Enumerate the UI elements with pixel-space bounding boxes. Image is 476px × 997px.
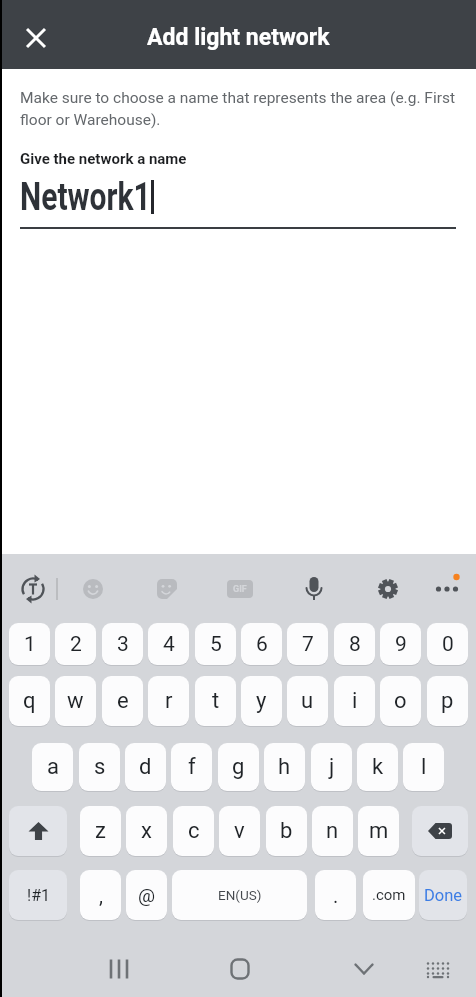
- button[interactable]: r: [148, 676, 189, 726]
- staticText: 3: [117, 632, 129, 657]
- button[interactable]: [368, 569, 408, 609]
- button[interactable]: [427, 569, 467, 609]
- button[interactable]: [9, 806, 67, 856]
- staticText: t: [212, 688, 220, 714]
- staticText: j: [329, 754, 335, 780]
- staticText: ,: [99, 884, 103, 907]
- staticText: a: [47, 754, 59, 780]
- button[interactable]: m: [358, 806, 399, 856]
- staticText: f: [188, 754, 196, 780]
- button[interactable]: u: [287, 676, 328, 726]
- staticText: e: [117, 688, 129, 714]
- button[interactable]: f: [171, 743, 212, 791]
- button[interactable]: b: [266, 806, 307, 856]
- button[interactable]: g: [218, 743, 259, 791]
- button[interactable]: [416, 948, 460, 992]
- staticText: GIF: [233, 584, 247, 595]
- button[interactable]: 9: [380, 623, 421, 665]
- button[interactable]: e: [102, 676, 143, 726]
- staticText: .com: [372, 886, 406, 904]
- button[interactable]: Done: [419, 870, 467, 920]
- staticText: 9: [395, 632, 407, 657]
- staticText: i: [352, 688, 358, 714]
- button[interactable]: [13, 569, 53, 609]
- button[interactable]: i: [334, 676, 375, 726]
- staticText: d: [139, 754, 152, 780]
- staticText: s: [94, 754, 106, 780]
- button[interactable]: EN(US): [172, 870, 307, 920]
- staticText: g: [232, 754, 245, 780]
- button[interactable]: !#1: [9, 870, 67, 920]
- button[interactable]: .: [315, 870, 356, 920]
- staticText: 8: [349, 632, 361, 657]
- button[interactable]: 0: [427, 623, 468, 665]
- staticText: q: [23, 688, 36, 714]
- staticText: w: [67, 688, 84, 714]
- button[interactable]: 4: [148, 623, 189, 665]
- staticText: n: [326, 818, 339, 844]
- button[interactable]: GIF: [220, 569, 260, 609]
- staticText: m: [369, 818, 389, 844]
- button[interactable]: 3: [102, 623, 143, 665]
- button[interactable]: d: [125, 743, 166, 791]
- button[interactable]: 7: [287, 623, 328, 665]
- button[interactable]: [147, 569, 187, 609]
- button[interactable]: @: [126, 870, 167, 920]
- button[interactable]: p: [427, 676, 468, 726]
- staticText: Done: [424, 886, 463, 905]
- button[interactable]: [73, 569, 113, 609]
- staticText: b: [280, 818, 293, 844]
- staticText: Give the network a name: [20, 150, 187, 168]
- button[interactable]: [97, 947, 141, 991]
- button[interactable]: q: [9, 676, 50, 726]
- staticText: 7: [302, 632, 314, 657]
- button[interactable]: h: [264, 743, 305, 791]
- button[interactable]: .com: [363, 870, 415, 920]
- staticText: p: [441, 688, 454, 714]
- staticText: x: [141, 818, 152, 844]
- button[interactable]: [294, 569, 334, 609]
- button[interactable]: [218, 947, 262, 991]
- staticText: EN(US): [218, 887, 262, 903]
- button[interactable]: k: [357, 743, 398, 791]
- button[interactable]: z: [80, 806, 121, 856]
- button[interactable]: [14, 16, 58, 60]
- button[interactable]: ,: [80, 870, 121, 920]
- button[interactable]: l: [403, 743, 444, 791]
- button[interactable]: 2: [55, 623, 96, 665]
- staticText: @: [138, 884, 156, 906]
- button[interactable]: v: [219, 806, 260, 856]
- staticText: 2: [70, 632, 82, 657]
- staticText: v: [234, 818, 245, 844]
- staticText: o: [394, 688, 407, 714]
- staticText: Add light network: [147, 24, 330, 51]
- button[interactable]: 5: [195, 623, 236, 665]
- staticText: 4: [163, 632, 175, 657]
- staticText: u: [301, 688, 314, 714]
- staticText: z: [95, 818, 106, 844]
- staticText: !#1: [27, 886, 50, 905]
- button[interactable]: o: [380, 676, 421, 726]
- button[interactable]: c: [173, 806, 214, 856]
- button[interactable]: [342, 947, 386, 991]
- button[interactable]: j: [311, 743, 352, 791]
- button[interactable]: y: [241, 676, 282, 726]
- button[interactable]: t: [195, 676, 236, 726]
- staticText: 6: [256, 632, 268, 657]
- button[interactable]: [412, 806, 468, 856]
- button[interactable]: n: [312, 806, 353, 856]
- button[interactable]: 1: [9, 623, 50, 665]
- staticText: r: [165, 688, 173, 714]
- button[interactable]: 8: [334, 623, 375, 665]
- staticText: 0: [442, 632, 454, 657]
- button[interactable]: w: [55, 676, 96, 726]
- staticText: y: [256, 688, 267, 714]
- button[interactable]: a: [32, 743, 73, 791]
- button[interactable]: 6: [241, 623, 282, 665]
- button[interactable]: s: [79, 743, 120, 791]
- staticText: h: [278, 754, 291, 780]
- staticText: 5: [210, 632, 222, 657]
- staticText: Network1: [20, 174, 151, 219]
- staticText: l: [421, 754, 427, 780]
- button[interactable]: x: [126, 806, 167, 856]
